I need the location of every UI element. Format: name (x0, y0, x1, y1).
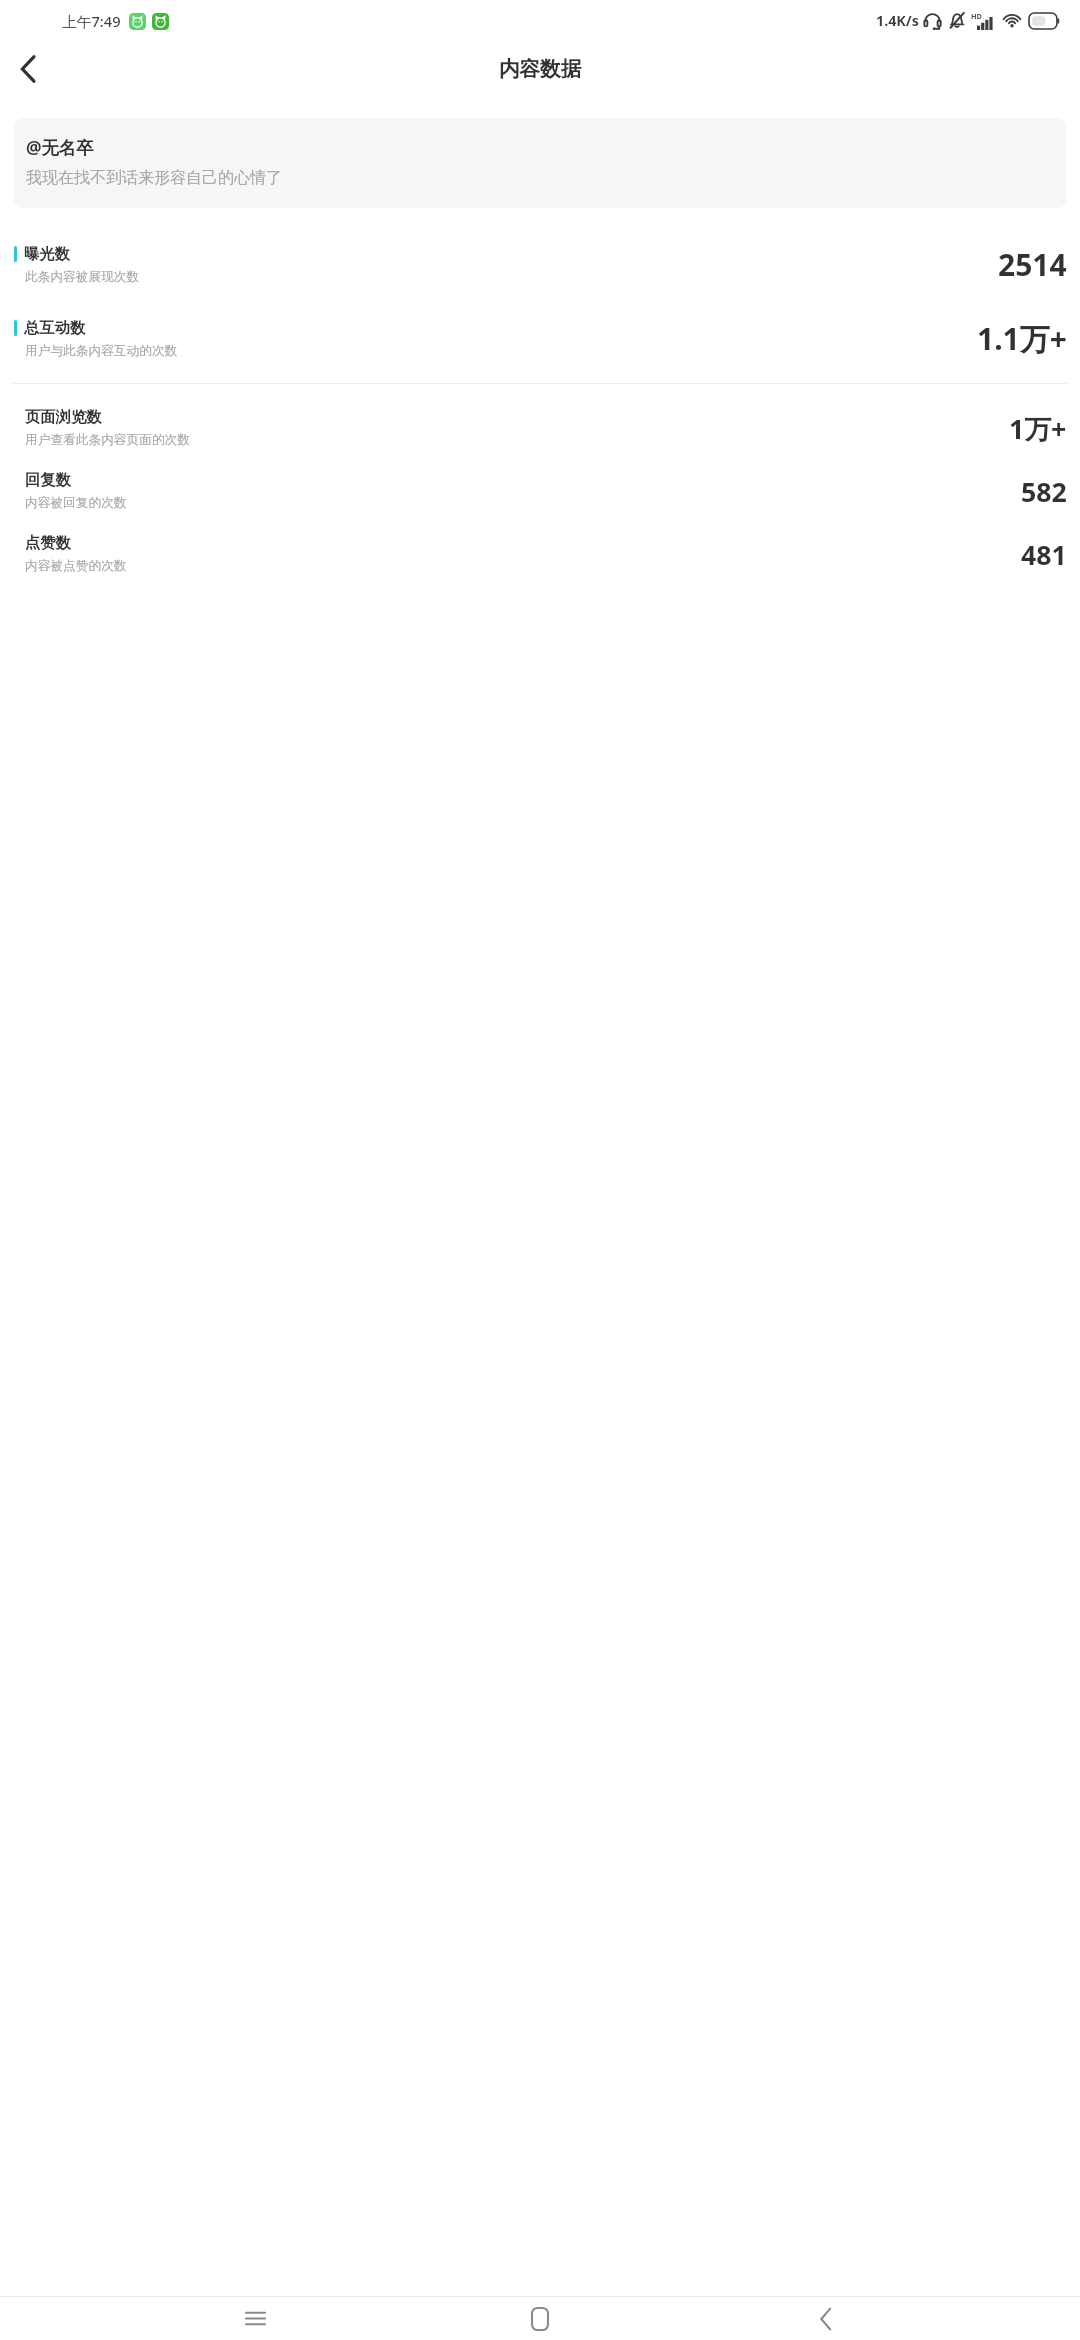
staticText: 1万+ (1009, 410, 1067, 446)
staticText: 页面浏览数 (25, 407, 102, 426)
staticText: 用户查看此条内容页面的次数 (25, 432, 190, 448)
staticText: 总互动数 (24, 318, 86, 337)
button[interactable]: Back (6, 47, 50, 91)
staticText: 我现在找不到话来形容自己的心情了 (26, 168, 282, 188)
staticText: 582 (1021, 473, 1067, 509)
button[interactable]: 总互动数 (0, 318, 1080, 359)
staticText: 此条内容被展现次数 (25, 269, 140, 285)
button[interactable]: Back (795, 2297, 855, 2340)
button[interactable]: 曝光数 (0, 244, 1080, 285)
button[interactable]: 回复数 (0, 470, 1080, 511)
staticText: 内容被点赞的次数 (25, 558, 127, 574)
staticText: @无名卒 (26, 136, 94, 160)
staticText: 1.1万+ (977, 318, 1067, 359)
staticText: 内容数据 (0, 56, 1080, 82)
button[interactable]: 点赞数 (0, 533, 1080, 574)
staticText: 用户与此条内容互动的次数 (25, 343, 178, 359)
staticText: 曝光数 (24, 244, 70, 263)
button[interactable]: Home (510, 2297, 570, 2340)
staticText: 内容被回复的次数 (25, 495, 127, 511)
button[interactable]: @无名卒 (14, 118, 1066, 208)
staticText: 上午7:49 (62, 11, 121, 31)
staticText: 回复数 (25, 470, 71, 489)
staticText: 1.4K/s (876, 11, 919, 30)
staticText: 点赞数 (25, 533, 71, 552)
staticText: 2514 (998, 244, 1067, 285)
button[interactable]: Recents (225, 2297, 285, 2340)
staticText: 481 (1021, 536, 1067, 572)
button[interactable]: 页面浏览数 (0, 407, 1080, 448)
staticText: HD (971, 11, 982, 21)
